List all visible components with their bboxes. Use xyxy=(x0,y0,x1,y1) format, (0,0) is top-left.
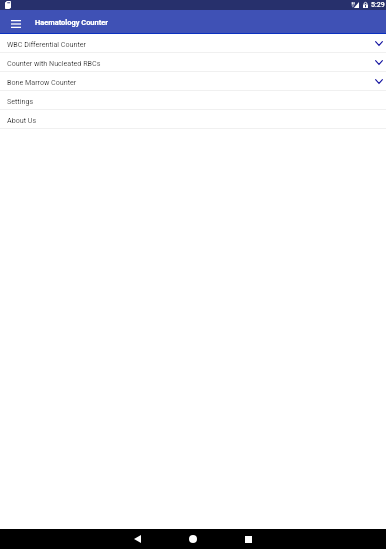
button[interactable]: Home xyxy=(183,529,203,549)
staticText: 5:29 xyxy=(371,1,385,9)
staticText: Settings xyxy=(7,97,34,105)
button[interactable]: Bone Marrow Counter xyxy=(0,72,386,91)
button[interactable]: Settings xyxy=(0,91,386,110)
staticText: About Us xyxy=(7,116,37,124)
button[interactable]: Back xyxy=(127,529,147,549)
staticText: Bone Marrow Counter xyxy=(7,78,77,86)
button[interactable]: About Us xyxy=(0,110,386,129)
button[interactable]: Counter with Nucleated RBCs xyxy=(0,53,386,72)
staticText: Haematology Counter xyxy=(35,18,108,27)
button[interactable]: Open navigation drawer xyxy=(4,12,27,35)
staticText: WBC Differential Counter xyxy=(7,40,86,48)
button[interactable]: Recent apps xyxy=(238,529,258,549)
staticText: Counter with Nucleated RBCs xyxy=(7,59,101,67)
button[interactable]: WBC Differential Counter xyxy=(0,34,386,53)
